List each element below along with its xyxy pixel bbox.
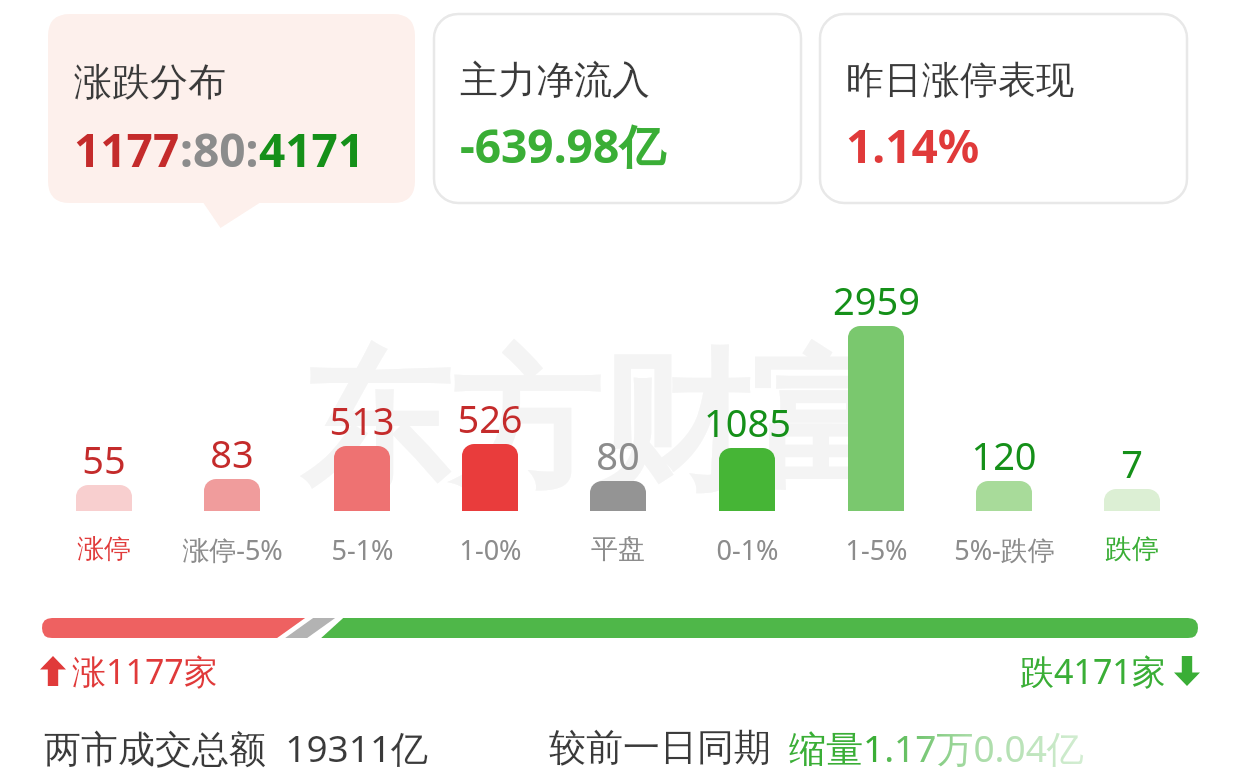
button[interactable]: 跌4171家 [1020, 648, 1200, 694]
staticText: 涨停-5% [182, 531, 283, 568]
button[interactable]: Rising [40, 648, 218, 694]
staticText: 昨日涨停表现 [846, 56, 1074, 104]
other: Falling [1174, 656, 1200, 686]
button[interactable]: 昨日涨停表现 [820, 14, 1187, 203]
staticText: 80 [596, 429, 640, 477]
staticText: 1-0% [459, 531, 522, 568]
staticText: 两市成交总额 19311亿 [44, 722, 429, 771]
staticText: 跌4171家 [1020, 648, 1166, 694]
button[interactable]: 5-1% [287, 527, 437, 571]
staticText: 2959 [833, 274, 920, 322]
staticText: 513 [329, 394, 395, 442]
staticText: 7 [1121, 437, 1143, 485]
staticText: 1.14% [846, 114, 980, 177]
button[interactable]: 涨跌分布 [48, 14, 415, 228]
staticText: 4171 [259, 118, 365, 181]
staticText: 较前一日同期 [549, 724, 771, 771]
staticText: 120 [971, 429, 1037, 477]
button[interactable]: 涨停-5% [157, 527, 307, 571]
button[interactable]: 1-0% [415, 527, 565, 571]
staticText: 0-1% [716, 531, 779, 568]
staticText: 东方财富 [300, 330, 900, 519]
staticText: 平盘 [591, 532, 645, 566]
other: Rising [40, 656, 66, 686]
staticText: 缩量1.17万0.04亿 [789, 722, 1084, 771]
button[interactable]: 1-5% [801, 527, 951, 571]
button[interactable]: 涨停 [29, 527, 179, 571]
staticText: 涨1177家 [72, 648, 218, 694]
staticText: 55 [82, 433, 126, 481]
button[interactable]: 平盘 [543, 527, 693, 571]
staticText: 5%-跌停 [954, 531, 1055, 568]
staticText: 5-1% [331, 531, 394, 568]
staticText: 主力净流入 [460, 56, 650, 104]
staticText: 1085 [704, 396, 791, 444]
button[interactable]: 跌停 [1057, 527, 1207, 571]
button[interactable]: 主力净流入 [434, 14, 801, 203]
staticText: 526 [457, 392, 523, 440]
staticText: 1177 [74, 118, 180, 181]
staticText: 涨跌分布 [74, 58, 226, 106]
staticText: 跌停 [1105, 532, 1159, 566]
staticText: 83 [210, 427, 254, 475]
staticText: 1-5% [845, 531, 908, 568]
button[interactable]: 5%-跌停 [929, 527, 1079, 571]
staticText: :80: [180, 118, 259, 181]
staticText: 涨停 [77, 532, 131, 566]
button[interactable]: 0-1% [672, 527, 822, 571]
staticText: -639.98亿 [460, 114, 666, 177]
